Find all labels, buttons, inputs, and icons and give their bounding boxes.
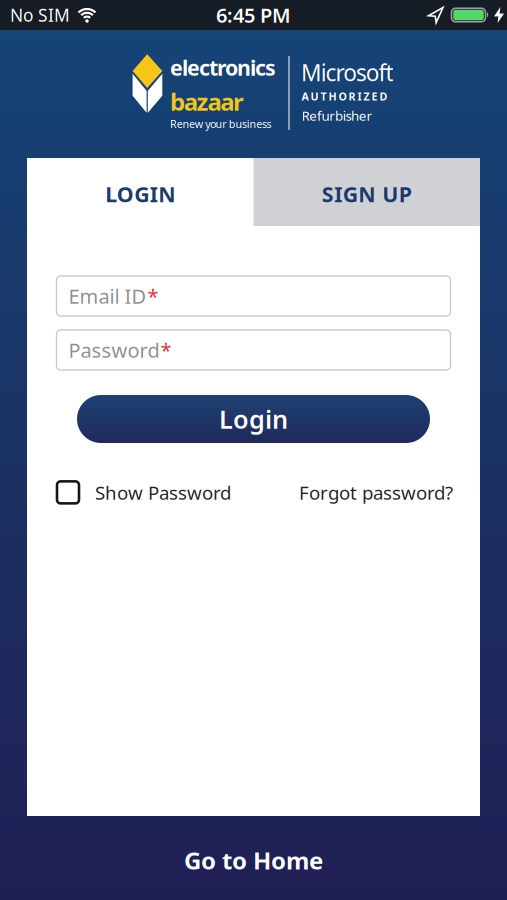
button[interactable]: Login [77,395,430,443]
staticText: electronics [170,53,276,82]
staticText: SIGN UP [322,180,412,208]
staticText: LOGIN [105,180,175,208]
button[interactable]: SIGN UP [253,158,480,226]
staticText: Forgot password? [299,480,453,505]
button[interactable]: Show Password [57,480,231,505]
button[interactable]: Go to Home [184,844,323,876]
staticText: 6:45 PM [216,2,291,28]
staticText: No SIM [10,3,70,26]
button[interactable]: Forgot password? [299,480,453,505]
staticText: bazaar [170,86,244,117]
staticText: * [160,337,171,363]
staticText: A U T H O R I Z E D [301,89,387,103]
staticText: * [147,283,158,309]
staticText: Refurbisher [301,107,372,124]
staticText: Renew your business [170,117,272,131]
staticText: Password [68,337,159,363]
staticText: Go to Home [184,844,323,876]
staticText: Show Password [95,480,231,505]
staticText: Microsoft [301,57,393,87]
staticText: Email ID [68,283,146,309]
staticText: Login [219,402,288,436]
button[interactable]: LOGIN [27,158,253,226]
